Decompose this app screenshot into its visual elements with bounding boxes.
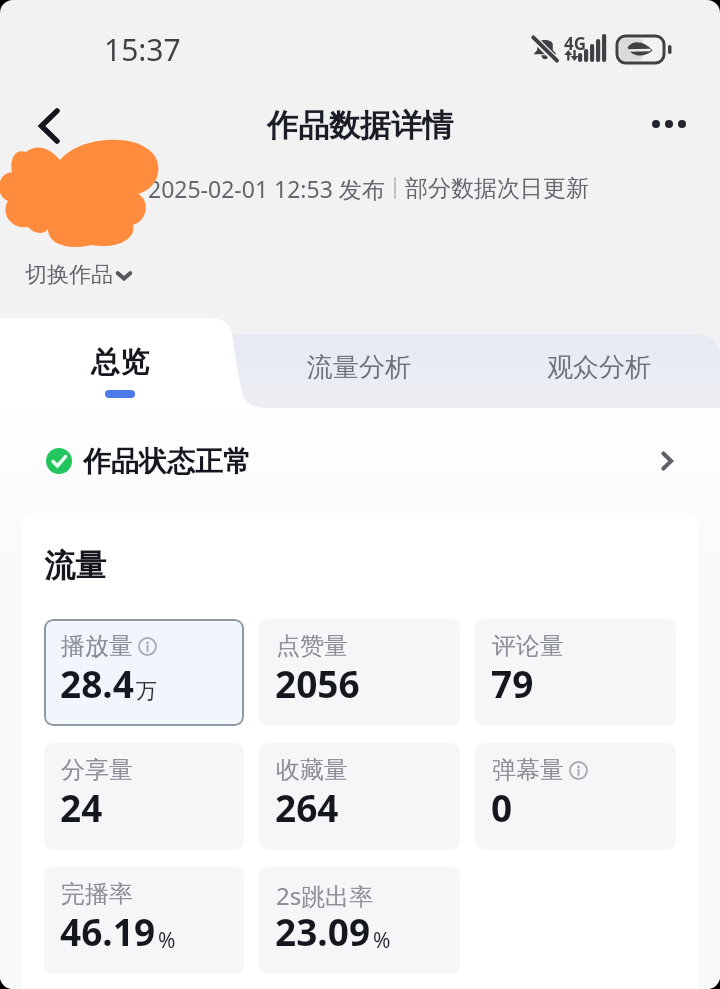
staticText: 弹幕量 [492,755,564,785]
staticText: 点赞量 [276,631,348,661]
staticText: 分享量 [61,755,133,785]
staticText: 切换作品 [25,261,113,289]
staticText: 评论量 [492,631,564,661]
button[interactable]: 2s跳出率 [259,867,460,974]
button[interactable]: 分享量 [44,743,244,850]
button[interactable]: 流量分析 [279,330,439,404]
button[interactable]: 收藏量 [259,743,460,850]
button[interactable]: 点赞量 [259,619,460,726]
button[interactable]: 完播率 [44,867,244,974]
button[interactable]: 总览 [0,318,240,408]
staticText: 万 [136,678,157,704]
staticText: 2025-02-01 12:53 发布 [148,173,385,204]
staticText: 28.4 [60,658,134,708]
staticText: 播放量 [61,631,133,661]
staticText: 79 [491,658,534,708]
button[interactable]: 切换作品 [18,257,142,293]
staticText: % [373,926,391,955]
button[interactable]: 播放量 [44,619,244,726]
button[interactable]: 评论量 [475,619,676,726]
staticText: 23.09 [275,906,371,956]
staticText: 作品状态正常 [83,444,251,479]
staticText: 4G [564,32,587,55]
button[interactable]: 作品状态正常 [0,425,720,497]
staticText: 总览 [91,344,149,381]
staticText: 0 [491,782,513,832]
staticText: 24 [60,782,103,832]
staticText: 流量 [44,546,106,585]
staticText: 264 [275,782,339,832]
staticText: 流量分析 [307,351,411,384]
button[interactable]: More options [640,99,694,153]
staticText: 作品数据详情 [267,106,453,145]
button[interactable]: 观众分析 [519,330,679,404]
button[interactable]: 弹幕量 [475,743,676,850]
staticText: 2s跳出率 [276,879,374,912]
staticText: % [158,926,176,955]
staticText: 2056 [275,658,360,708]
staticText: 收藏量 [276,755,348,785]
staticText: 46.19 [60,906,156,956]
staticText: 观众分析 [547,351,651,384]
staticText: 15:37 [104,29,181,70]
button[interactable]: Back [23,100,75,152]
staticText: 部分数据次日更新 [405,174,589,203]
staticText: 完播率 [61,879,133,909]
